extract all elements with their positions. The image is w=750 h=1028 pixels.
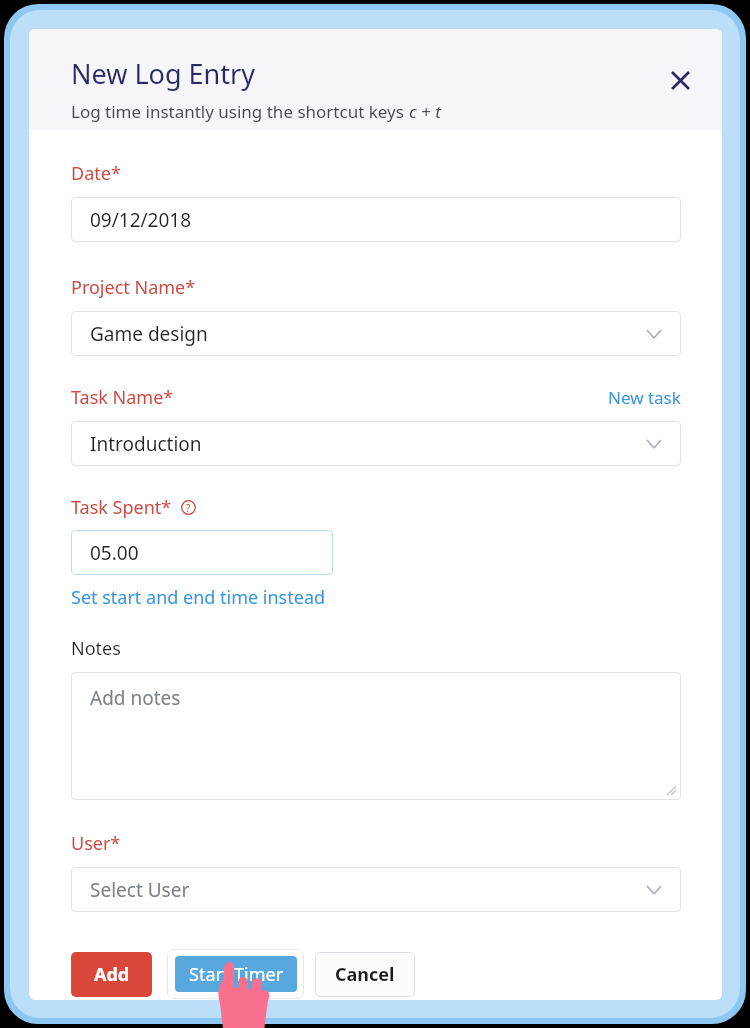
button[interactable]: Cancel (315, 952, 415, 997)
staticText: Notes (71, 636, 121, 661)
staticText: ? (186, 501, 191, 515)
staticText: Set start and end time instead (71, 585, 326, 610)
staticText: New task (608, 386, 681, 409)
button[interactable]: Game design (71, 311, 681, 356)
button[interactable]: Set start and end time instead (71, 585, 326, 610)
staticText: User* (71, 831, 121, 856)
staticText: New Log Entry (71, 55, 255, 92)
staticText: Task Name* (71, 385, 174, 410)
staticText: Task Spent* (71, 495, 172, 520)
button[interactable]: 09/12/2018 (71, 197, 681, 242)
staticText: Project Name* (71, 275, 196, 300)
staticText: Date* (71, 161, 121, 186)
staticText: Introduction (90, 431, 202, 457)
button[interactable]: Close (657, 57, 703, 103)
staticText: 09/12/2018 (90, 207, 192, 233)
button[interactable]: Add (71, 952, 152, 997)
button[interactable]: 05.00 (71, 530, 333, 575)
staticText: c + t (409, 100, 441, 123)
staticText: Select User (90, 877, 190, 903)
staticText: Log time instantly using the shortcut ke… (71, 100, 409, 123)
staticText: Game design (90, 321, 208, 347)
button[interactable]: Add notes (71, 672, 681, 800)
staticText: 05.00 (90, 540, 139, 566)
staticText: Add (94, 962, 130, 987)
button[interactable]: Introduction (71, 421, 681, 466)
button[interactable]: Start Timer (167, 949, 304, 999)
button[interactable]: Select User (71, 867, 681, 912)
staticText: Add notes (90, 685, 181, 711)
staticText: Cancel (335, 962, 395, 987)
button[interactable]: New task (608, 386, 681, 409)
staticText: Start Timer (189, 962, 284, 987)
